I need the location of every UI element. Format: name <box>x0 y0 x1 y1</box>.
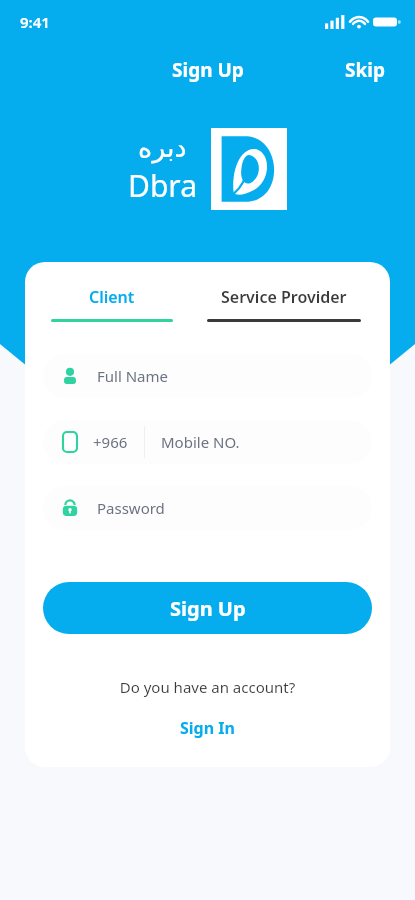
staticText: Full Name <box>97 366 168 386</box>
button[interactable]: Sign In <box>168 713 247 743</box>
staticText: Sign Up <box>172 57 244 83</box>
staticText: Sign Up <box>170 595 246 622</box>
button[interactable]: Skip <box>337 53 393 87</box>
button[interactable]: Client <box>35 286 188 322</box>
staticText: Skip <box>345 57 385 83</box>
staticText: Sign In <box>180 717 235 739</box>
staticText: Mobile NO. <box>161 432 240 452</box>
staticText: Dbra <box>128 165 197 206</box>
button[interactable]: Service Provider <box>188 286 380 322</box>
button[interactable]: Full Name <box>43 354 372 398</box>
staticText: Password <box>97 498 165 518</box>
staticText: دبره <box>138 132 187 163</box>
button[interactable]: Password <box>43 486 372 530</box>
staticText: Do you have an account? <box>25 677 390 697</box>
button[interactable]: Sign Up <box>162 53 254 87</box>
staticText: +966 <box>93 432 128 452</box>
staticText: Client <box>89 286 135 308</box>
button[interactable]: Sign Up <box>43 582 372 634</box>
staticText: 9:41 <box>20 12 50 32</box>
staticText: Service Provider <box>221 286 347 308</box>
button[interactable]: +966 <box>43 420 372 464</box>
